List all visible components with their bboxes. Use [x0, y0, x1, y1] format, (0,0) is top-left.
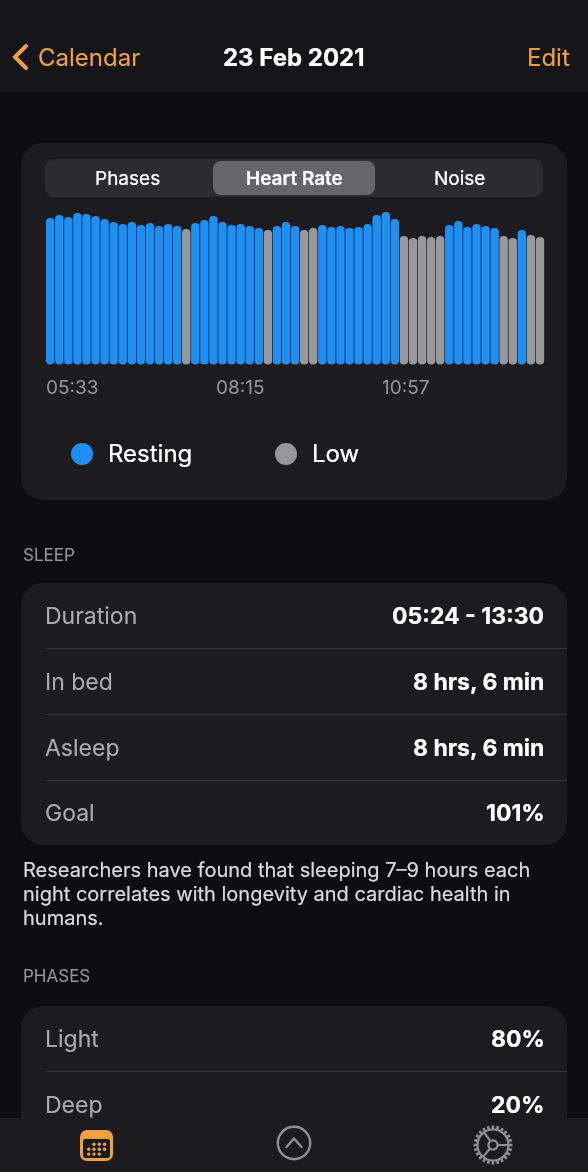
staticText: Calendar — [38, 43, 141, 72]
staticText: Duration — [45, 602, 138, 630]
staticText: night correlates with longevity and card… — [23, 882, 511, 906]
staticText: Goal — [45, 799, 95, 827]
staticText: 8 hrs, 6 min — [413, 668, 545, 696]
button[interactable]: Deep — [21, 1072, 567, 1138]
button[interactable]: Calendar — [10, 38, 141, 76]
staticText: Deep — [45, 1091, 103, 1119]
staticText: Asleep — [45, 734, 120, 762]
staticText: Low — [312, 439, 360, 468]
staticText: SLEEP — [23, 545, 75, 566]
button[interactable]: Goal — [21, 781, 567, 845]
button[interactable]: Heart Rate — [213, 161, 375, 195]
button[interactable]: Noise — [377, 159, 543, 197]
staticText: 23 Feb 2021 — [223, 43, 365, 72]
staticText: Light — [45, 1025, 99, 1053]
staticText: In bed — [45, 668, 113, 696]
button[interactable]: Phases — [45, 159, 211, 197]
staticText: humans. — [23, 906, 104, 930]
staticText: Noise — [434, 167, 486, 190]
button[interactable] — [71, 1120, 121, 1170]
button[interactable]: Duration — [21, 583, 567, 649]
button[interactable]: Asleep — [21, 715, 567, 781]
button[interactable]: Light — [21, 1006, 567, 1072]
staticText: Edit — [527, 43, 570, 72]
staticText: 05:33 — [46, 376, 99, 399]
staticText: Resting — [108, 439, 193, 468]
staticText: 05:24 - 13:30 — [392, 602, 545, 630]
staticText: Phases — [95, 167, 161, 190]
button[interactable] — [269, 1118, 319, 1168]
staticText: 101% — [486, 799, 545, 827]
staticText: 20% — [491, 1091, 545, 1119]
staticText: Heart Rate — [246, 167, 343, 190]
staticText: PHASES — [23, 966, 91, 987]
button[interactable]: Edit — [474, 38, 570, 76]
staticText: 8 hrs, 6 min — [413, 734, 545, 762]
button[interactable]: In bed — [21, 649, 567, 715]
staticText: 10:57 — [382, 376, 430, 399]
staticText: 08:15 — [216, 376, 265, 399]
button[interactable] — [468, 1120, 518, 1170]
staticText: Researchers have found that sleeping 7–9… — [23, 858, 531, 882]
staticText: 80% — [491, 1025, 545, 1053]
